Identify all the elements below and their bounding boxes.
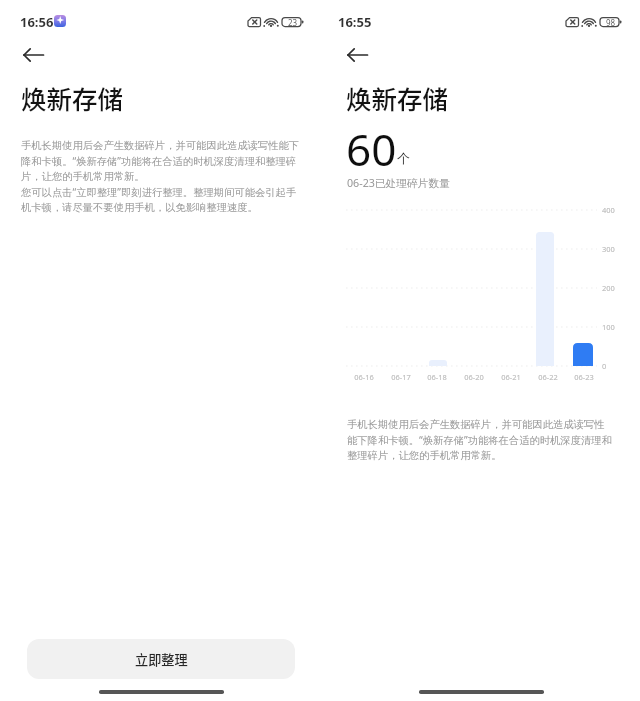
staticText: 06-22 <box>528 372 568 382</box>
staticText: 300 <box>602 244 615 254</box>
other: Network and battery status <box>564 15 624 29</box>
staticText: 16:55 <box>338 13 372 31</box>
button[interactable]: Back <box>336 43 378 67</box>
staticText: 06-20 <box>454 372 494 382</box>
other: Cleaner app notification <box>54 15 66 27</box>
staticText: 06-18 <box>417 372 457 382</box>
staticText: 400 <box>602 205 615 215</box>
staticText: 200 <box>602 283 615 293</box>
staticText: 立即整理 <box>135 650 188 669</box>
staticText: 手机长期使用后会产生数据碎片，并可能因此造成读写性 能下降和卡顿。“焕新存储”功… <box>347 418 612 462</box>
staticText: 06-17 <box>381 372 421 382</box>
staticText: 98 <box>602 17 619 28</box>
staticText: 焕新存储 <box>21 79 124 116</box>
other: Network and battery status <box>246 15 306 29</box>
staticText: 16:56 <box>20 13 54 31</box>
staticText: 手机长期使用后会产生数据碎片，并可能因此造成读写性能下 降和卡顿。“焕新存储”功… <box>21 139 300 214</box>
staticText: 23 <box>284 17 301 28</box>
staticText: 个 <box>397 150 410 166</box>
staticText: 焕新存储 <box>346 79 449 116</box>
staticText: 06-21 <box>491 372 531 382</box>
staticText: 06-16 <box>344 372 384 382</box>
staticText: 0 <box>602 361 607 371</box>
button[interactable]: Back <box>12 43 54 67</box>
button[interactable]: 立即整理 <box>27 639 295 679</box>
staticText: 100 <box>602 322 615 332</box>
staticText: 60 <box>346 119 397 179</box>
staticText: 06-23 <box>564 372 604 382</box>
staticText: 06-23已处理碎片数量 <box>347 176 450 191</box>
